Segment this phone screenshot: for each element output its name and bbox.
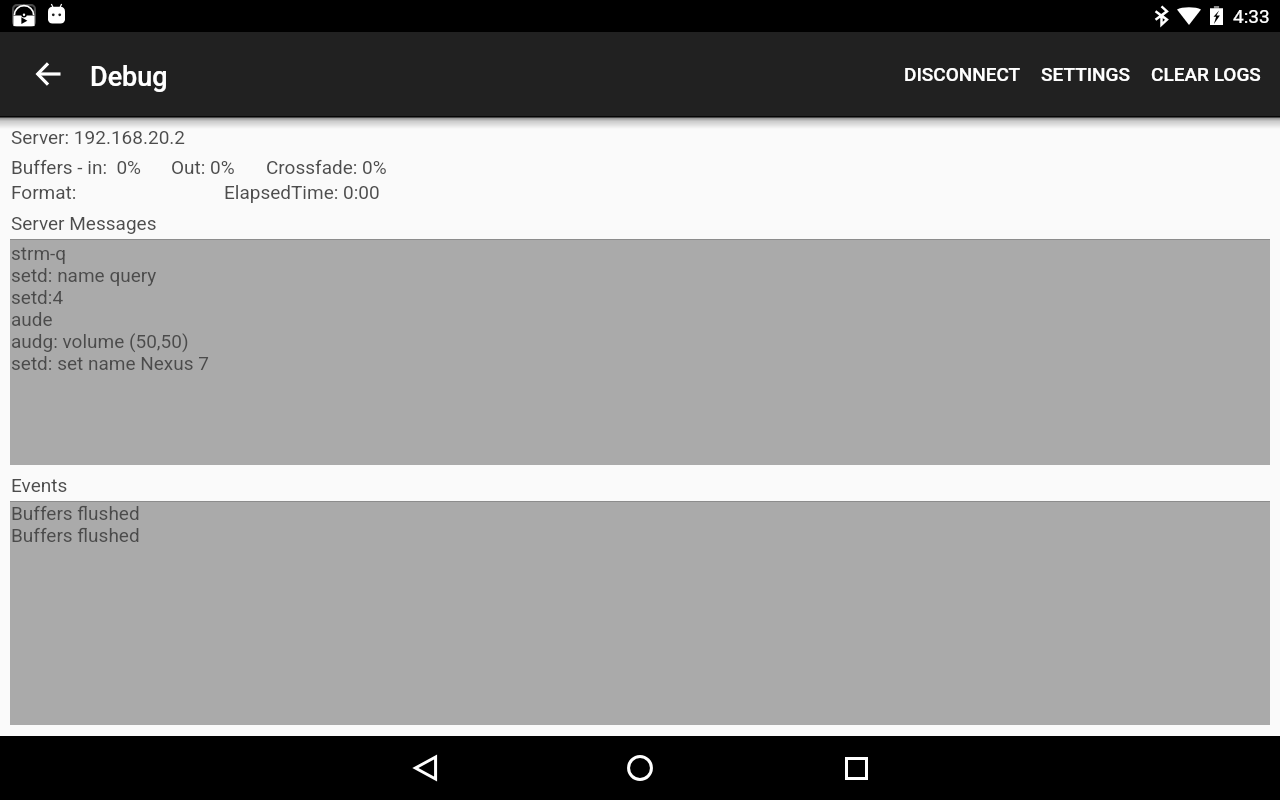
staticText: Out: 0% (171, 156, 235, 178)
button[interactable]: Back (393, 736, 457, 800)
staticText: 4:33 (1233, 5, 1270, 27)
button[interactable]: Home (608, 736, 672, 800)
staticText: Format: (11, 181, 77, 203)
staticText: Events (11, 474, 68, 496)
staticText: CLEAR LOGS (1151, 63, 1261, 85)
staticText: strm-q (11, 242, 67, 264)
staticText: ElapsedTime: 0:00 (224, 181, 380, 203)
button[interactable]: DISCONNECT (894, 32, 1031, 116)
staticText: Buffers flushed (11, 502, 140, 524)
staticText: Server Messages (11, 212, 157, 234)
button[interactable]: CLEAR LOGS (1141, 32, 1271, 116)
staticText: setd: set name Nexus 7 (11, 352, 209, 374)
staticText: Buffers flushed (11, 524, 140, 546)
staticText: Server: 192.168.20.2 (11, 126, 186, 148)
staticText: audg: volume (50,50) (11, 330, 189, 352)
staticText: setd: name query (11, 264, 157, 286)
staticText: aude (11, 308, 53, 330)
staticText: Debug (90, 61, 168, 93)
staticText: setd:4 (11, 286, 64, 308)
button[interactable]: Recent apps (824, 736, 888, 800)
staticText: SETTINGS (1041, 63, 1131, 85)
staticText: Buffers - in: 0% (11, 156, 142, 178)
staticText: Crossfade: 0% (266, 156, 387, 178)
button[interactable]: Navigate up (25, 50, 73, 98)
button[interactable]: SETTINGS (1031, 32, 1141, 116)
staticText: DISCONNECT (904, 63, 1021, 85)
